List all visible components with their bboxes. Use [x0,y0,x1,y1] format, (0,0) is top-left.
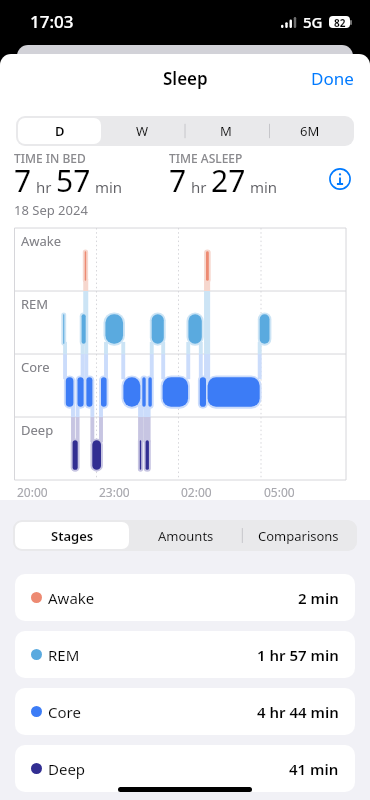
staticText: REM [48,645,80,665]
staticText: 2 min [298,588,339,608]
staticText: REM [21,295,49,313]
button[interactable]: Info [318,157,362,201]
staticText: Core [21,358,50,376]
button[interactable]: W [101,118,184,144]
staticText: 6M [300,122,320,140]
staticText: 7 [14,160,32,201]
staticText: Core [48,702,81,722]
staticText: Awake [48,588,95,608]
staticText: 82 [334,16,346,28]
staticText: hr [187,177,207,197]
button[interactable]: Core [15,688,355,735]
button[interactable]: 6M [268,118,352,144]
staticText: TIME IN BED [14,150,86,166]
staticText: Comparisons [258,527,339,545]
staticText: 41 min [289,759,339,779]
button[interactable]: Awake [15,574,355,621]
staticText: TIME ASLEEP [169,150,243,166]
staticText: 7 [169,160,187,201]
staticText: Awake [21,232,62,250]
staticText: 05:00 [264,484,295,500]
staticText: 5G [303,12,323,32]
staticText: Deep [48,759,86,779]
button[interactable]: Amounts [129,522,242,549]
button[interactable]: Done [295,57,370,100]
staticText: Amounts [158,527,214,545]
button[interactable]: D [18,118,101,144]
staticText: Done [311,67,354,90]
staticText: W [136,122,149,140]
staticText: hr [32,177,52,197]
staticText: 23:00 [99,484,130,500]
staticText: 02:00 [181,484,212,500]
staticText: Sleep [163,67,208,90]
staticText: 17:03 [30,10,74,33]
button[interactable]: REM [15,631,355,678]
staticText: 20:00 [17,484,48,500]
button[interactable]: M [184,118,268,144]
staticText: 1 hr 57 min [257,645,339,665]
staticText: min [91,177,123,197]
staticText: D [55,122,65,140]
button[interactable]: Deep [15,745,355,792]
staticText: min [246,177,278,197]
staticText: M [220,122,232,140]
staticText: Deep [21,421,54,439]
staticText: 27 [211,160,246,201]
staticText: Stages [51,527,94,545]
button[interactable]: Comparisons [242,522,355,549]
staticText: 4 hr 44 min [257,702,339,722]
staticText: 57 [56,160,91,201]
staticText: 18 Sep 2024 [14,201,88,219]
button[interactable]: Stages [15,522,129,549]
